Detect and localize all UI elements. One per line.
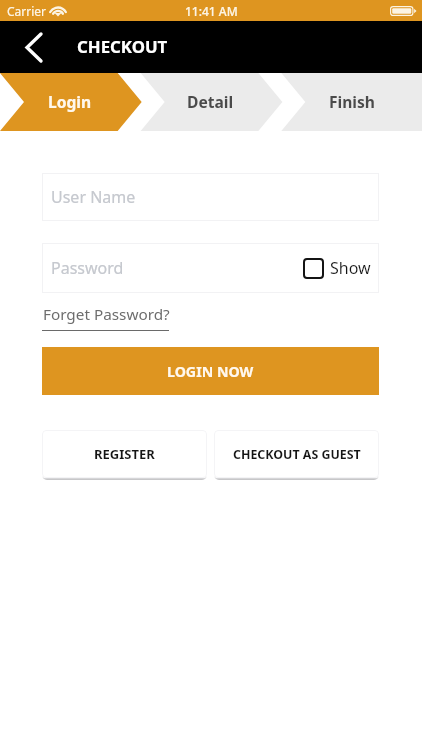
button[interactable]: Finish	[281, 73, 422, 131]
staticText: Show	[330, 257, 371, 279]
staticText: Login	[48, 91, 92, 112]
staticText: CHECKOUT	[77, 35, 168, 58]
button[interactable]: Detail	[140, 73, 281, 131]
staticText: Finish	[329, 91, 375, 112]
staticText: CHECKOUT AS GUEST	[233, 446, 361, 463]
button[interactable]: Show	[303, 257, 371, 279]
staticText: Forget Password?	[43, 304, 170, 325]
staticText: Carrier	[7, 3, 47, 19]
staticText: REGISTER	[94, 445, 155, 463]
button[interactable]: LOGIN NOW	[42, 347, 379, 395]
button[interactable]: REGISTER	[42, 430, 207, 478]
staticText: User Name	[51, 186, 136, 208]
staticText: LOGIN NOW	[167, 362, 254, 381]
staticText: Detail	[187, 91, 234, 112]
button[interactable]: User Name	[42, 173, 379, 221]
button[interactable]: Forget Password?	[42, 300, 172, 334]
staticText: Password	[51, 257, 124, 279]
button[interactable]: Back	[10, 23, 58, 71]
button[interactable]: Login	[0, 73, 140, 131]
staticText: 11:41 AM	[185, 3, 238, 19]
button[interactable]: CHECKOUT AS GUEST	[214, 430, 379, 478]
